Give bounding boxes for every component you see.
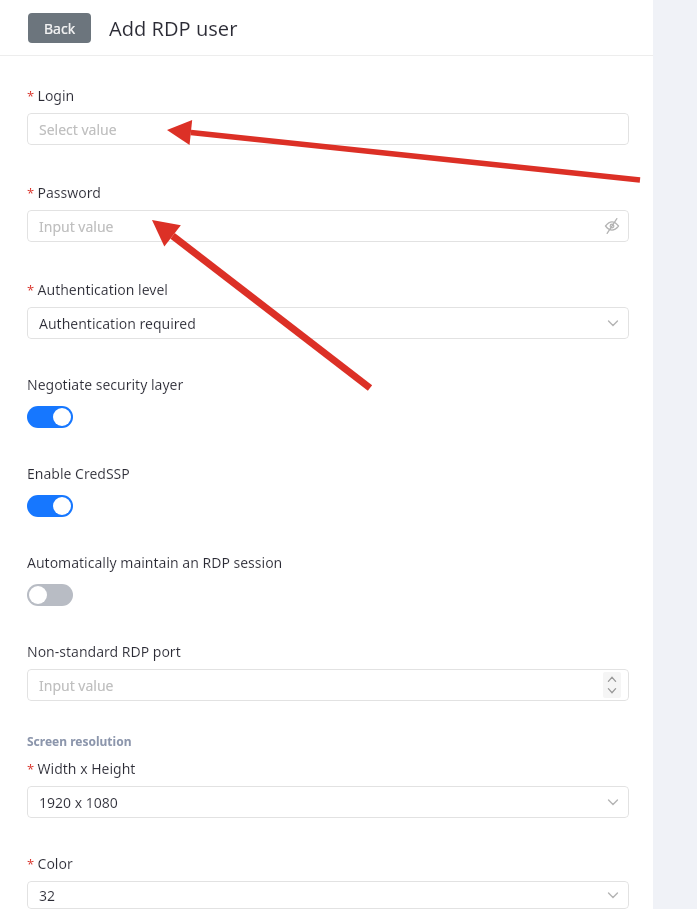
button[interactable]: Negotiate security layer xyxy=(27,406,73,428)
other: Open dropdown xyxy=(605,887,621,903)
staticText: 1920 x 1080 xyxy=(39,793,118,812)
staticText: * Login xyxy=(27,86,75,105)
other: Open dropdown xyxy=(605,794,621,810)
button[interactable]: 32 xyxy=(27,881,629,909)
button[interactable]: Select value xyxy=(27,113,629,145)
button[interactable]: Back xyxy=(28,13,91,43)
staticText: Back xyxy=(44,19,76,38)
staticText: Add RDP user xyxy=(109,15,238,42)
staticText: * Width x Height xyxy=(27,759,136,778)
other: Open dropdown xyxy=(605,315,621,331)
staticText: 32 xyxy=(39,886,56,905)
staticText: Non-standard RDP port xyxy=(27,642,181,661)
button[interactable]: Authentication required xyxy=(27,307,629,339)
staticText: Screen resolution xyxy=(27,733,132,749)
staticText: Authentication required xyxy=(39,314,196,333)
staticText: * Authentication level xyxy=(27,280,168,299)
button[interactable]: Automatically maintain an RDP session xyxy=(27,584,73,606)
other: Show password xyxy=(603,217,621,235)
staticText: Enable CredSSP xyxy=(27,464,130,483)
button[interactable]: Enable CredSSP xyxy=(27,495,73,517)
button[interactable]: Input value xyxy=(27,210,629,242)
button[interactable]: Increment or decrement value xyxy=(603,672,621,698)
staticText: * Password xyxy=(27,183,101,202)
staticText: Input value xyxy=(39,676,114,695)
staticText: Input value xyxy=(39,217,114,236)
staticText: Automatically maintain an RDP session xyxy=(27,553,283,572)
staticText: * Color xyxy=(27,854,73,873)
staticText: Select value xyxy=(39,120,117,139)
button[interactable]: 1920 x 1080 xyxy=(27,786,629,818)
button[interactable]: Input value xyxy=(27,669,629,701)
staticText: Negotiate security layer xyxy=(27,375,184,394)
